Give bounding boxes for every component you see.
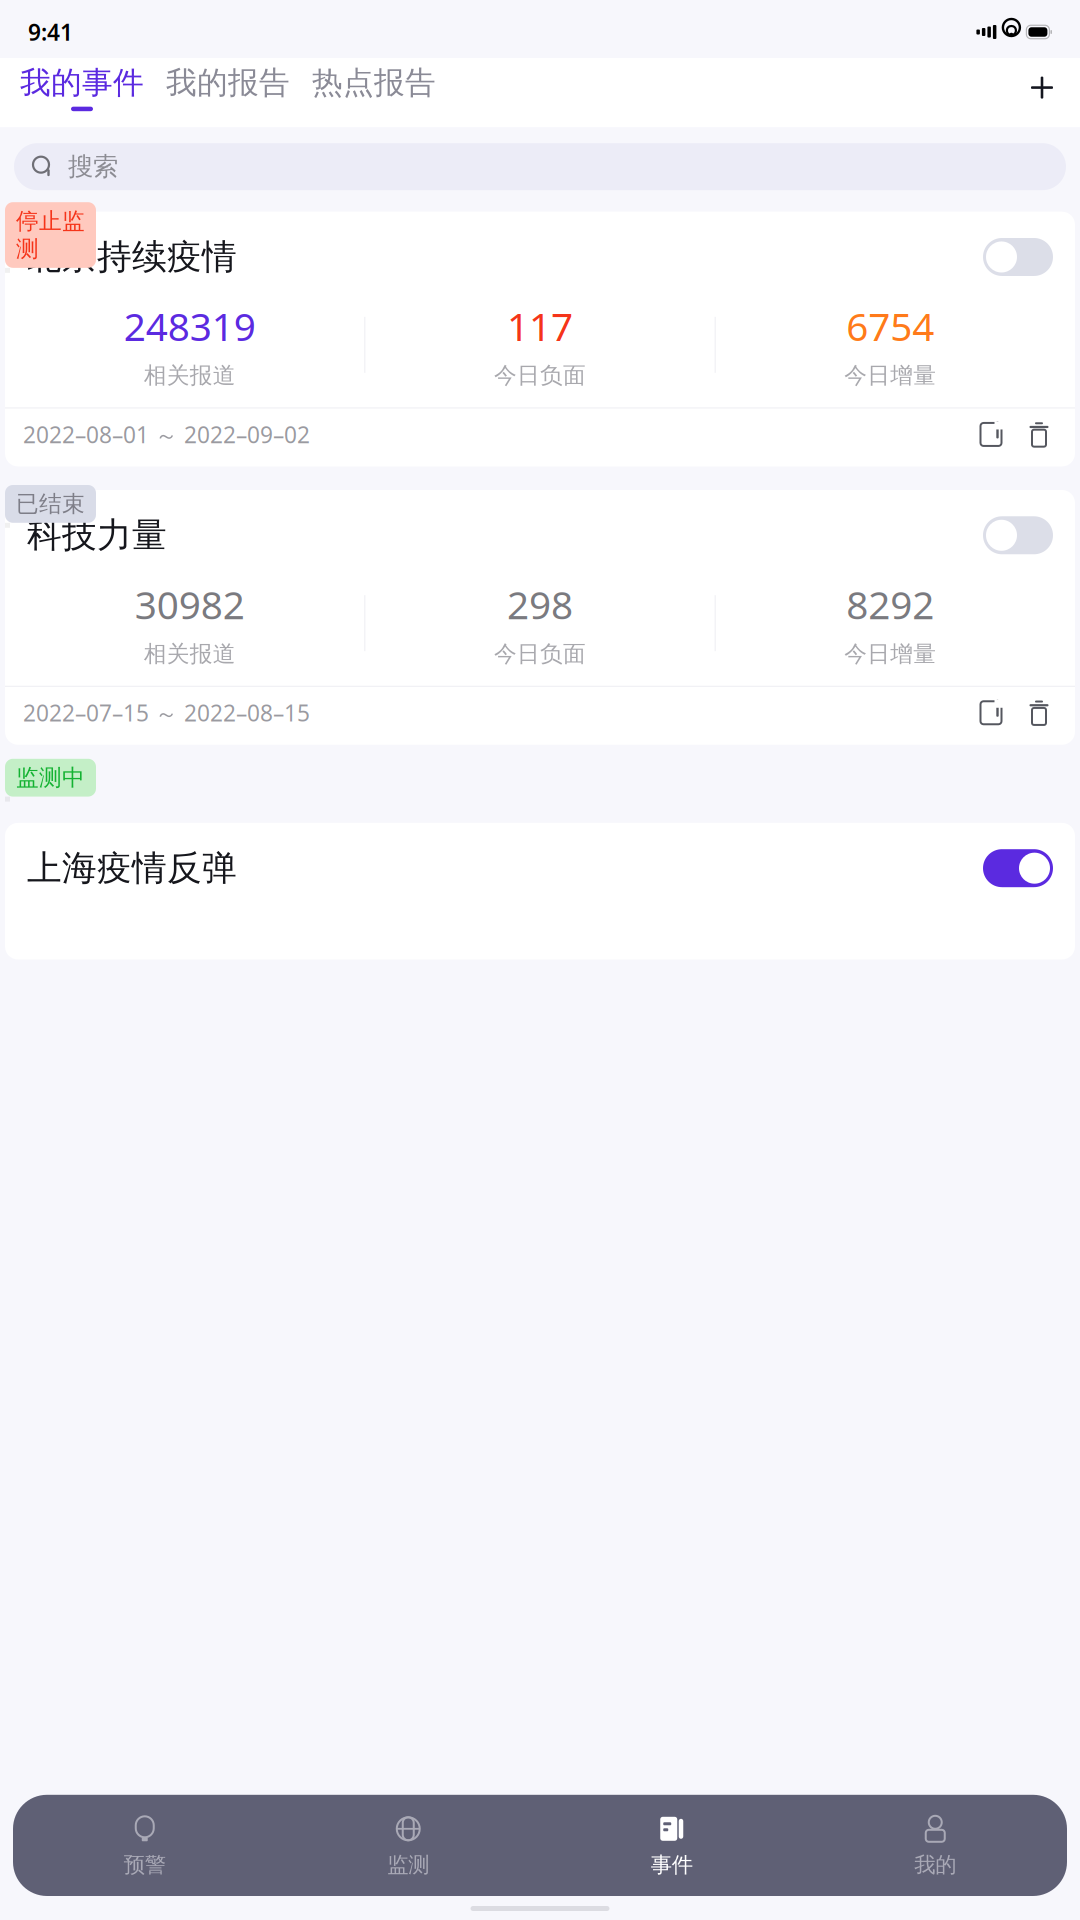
staticText: 相关报道 (144, 640, 236, 668)
staticText: 117 (507, 300, 573, 352)
button[interactable]: 新建事件 (1022, 68, 1062, 108)
button[interactable]: 我的事件 (18, 64, 146, 111)
staticText: 预警 (124, 1852, 166, 1878)
button[interactable]: 热点报告 (292, 64, 438, 111)
staticText: 监测中 (16, 764, 85, 792)
staticText: 2022–07–15 ～ 2022–08–15 (23, 698, 310, 728)
staticText: 北京持续疫情 (27, 236, 237, 278)
button[interactable]: 编辑 (973, 416, 1009, 452)
button[interactable]: 事件 (540, 1808, 803, 1883)
staticText: 我的事件 (20, 64, 144, 102)
staticText: 热点报告 (312, 64, 436, 102)
staticText: 已结束 (16, 490, 85, 518)
button[interactable]: 上海疫情反弹 (5, 759, 1075, 1024)
staticText: 搜索 (68, 151, 118, 182)
button[interactable]: 删除 (1021, 416, 1057, 452)
button[interactable]: 我的报告 (146, 64, 292, 111)
button[interactable]: 编辑 (973, 695, 1009, 731)
staticText: 9:41 (28, 17, 73, 47)
button[interactable]: 北京持续疫情 (5, 202, 1075, 476)
staticText: 上海疫情反弹 (27, 847, 237, 889)
staticText: 停止监测 (16, 207, 85, 263)
staticText: 事件 (651, 1852, 693, 1878)
staticText: 相关报道 (144, 362, 236, 389)
button[interactable]: 搜索 (14, 143, 1066, 190)
staticText: 298 (507, 579, 573, 630)
staticText: 监测 (387, 1852, 429, 1878)
staticText: 30982 (135, 579, 245, 630)
button[interactable]: 监测 (276, 1808, 540, 1883)
staticText: 2022–08–01 ～ 2022–09–02 (23, 419, 310, 449)
staticText: 科技力量 (27, 514, 167, 557)
button[interactable]: 科技力量 (5, 485, 1075, 750)
button[interactable]: 我的 (803, 1808, 1067, 1883)
staticText: 8292 (846, 579, 934, 630)
button[interactable]: 预警 (13, 1808, 276, 1883)
staticText: 今日负面 (494, 640, 586, 668)
staticText: 今日负面 (494, 362, 586, 389)
staticText: 今日增量 (844, 362, 936, 389)
staticText: 248319 (124, 300, 256, 352)
staticText: 今日增量 (844, 640, 936, 668)
button[interactable]: 删除 (1021, 695, 1057, 731)
staticText: 我的报告 (166, 64, 290, 102)
staticText: 6754 (846, 300, 934, 352)
staticText: 我的 (914, 1852, 956, 1878)
